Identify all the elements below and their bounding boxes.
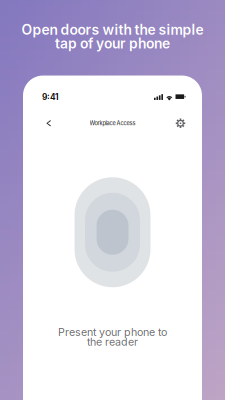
staticText: tap of your phone — [55, 35, 170, 52]
button[interactable]: Settings — [169, 114, 191, 132]
staticText: Open doors with the simple — [21, 21, 203, 38]
staticText: 9:41 — [42, 92, 59, 102]
staticText: Workplace Access — [89, 120, 135, 127]
button[interactable]: Back — [38, 114, 60, 132]
staticText: the reader — [87, 335, 138, 348]
staticText: Present your phone to — [58, 326, 167, 339]
